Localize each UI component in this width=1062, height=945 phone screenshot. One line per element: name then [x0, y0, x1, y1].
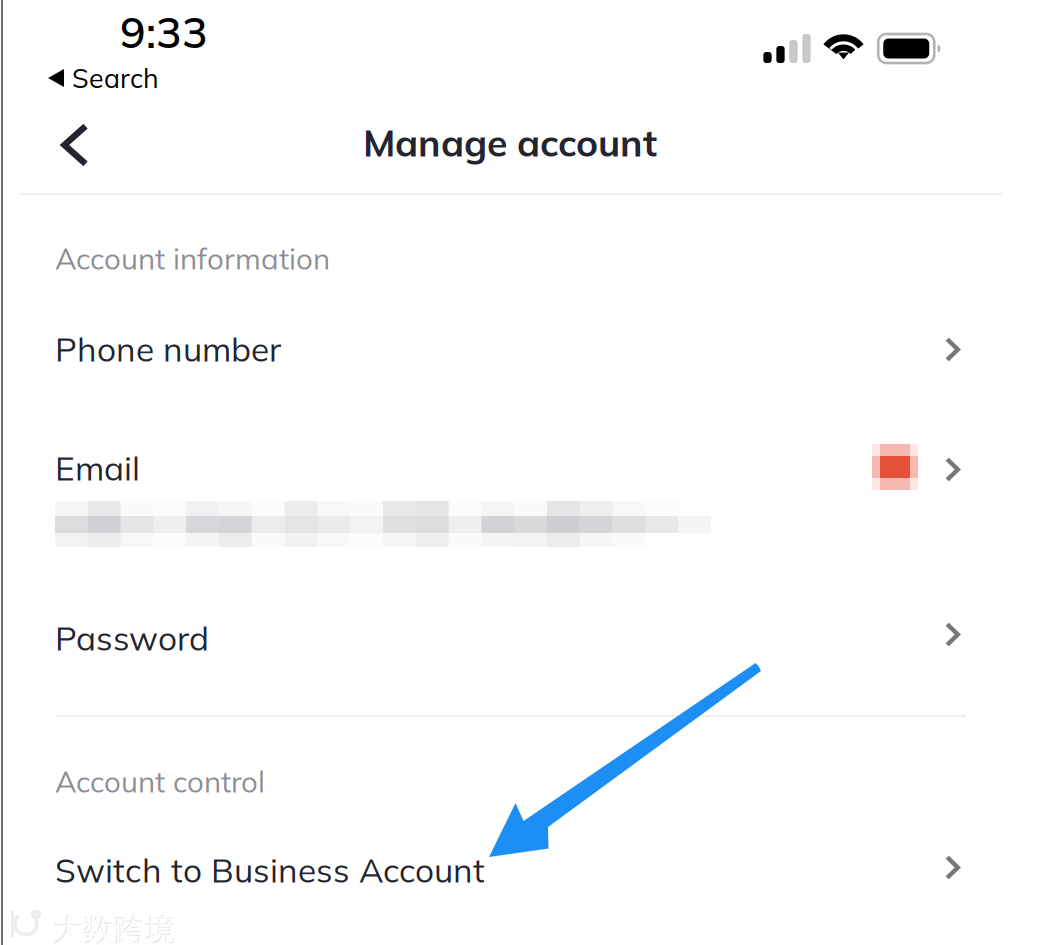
staticText: Email: [55, 447, 140, 489]
staticText: Account control: [55, 763, 265, 800]
staticText: Phone number: [55, 328, 281, 370]
staticText: 9:33: [120, 5, 208, 58]
button[interactable]: Back: [55, 123, 139, 191]
staticText: Switch to Business Account: [55, 849, 485, 891]
button[interactable]: Switch to Business Account: [0, 828, 1062, 918]
staticText: Account information: [55, 240, 330, 277]
button[interactable]: Search: [47, 63, 159, 93]
staticText: 大数跨境: [53, 912, 177, 945]
staticText: Manage account: [363, 119, 657, 166]
button[interactable]: Phone number: [0, 305, 1062, 395]
button[interactable]: Email: [0, 424, 1062, 574]
staticText: Password: [55, 617, 209, 659]
staticText: 大数跨境: [52, 911, 176, 945]
button[interactable]: Password: [0, 596, 1062, 686]
staticText: Search: [72, 61, 159, 95]
